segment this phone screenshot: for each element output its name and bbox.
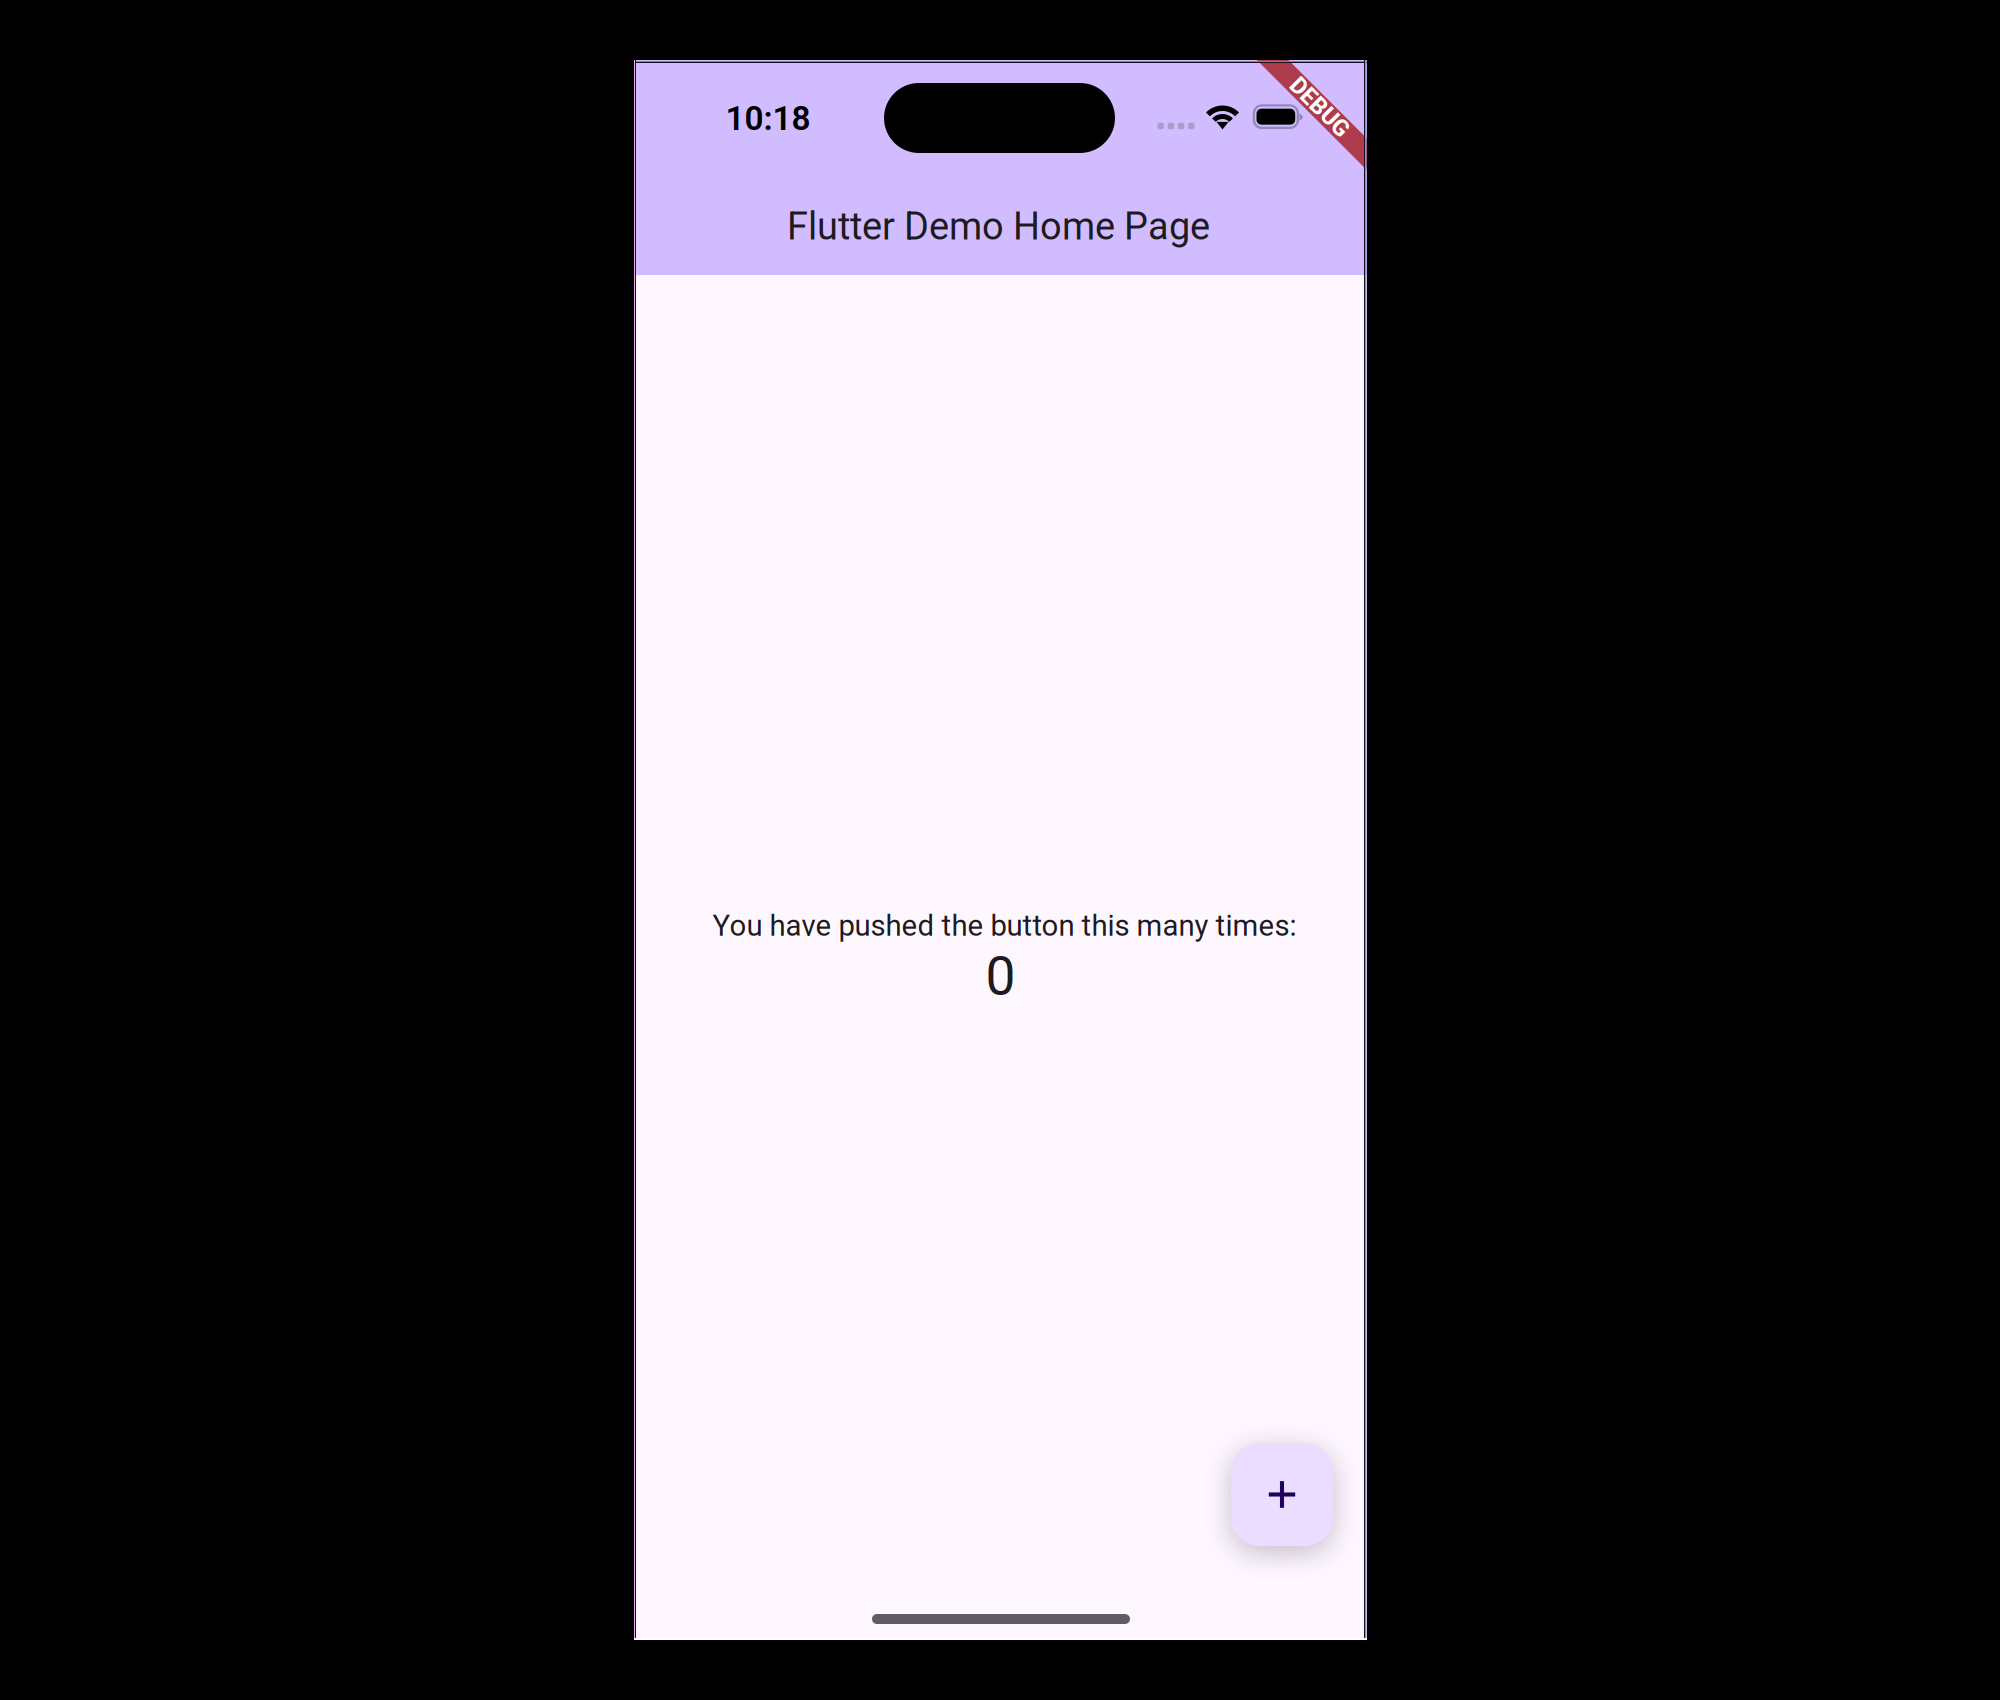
staticText: 0: [985, 945, 1015, 1007]
staticText: DEBUG: [1283, 93, 1357, 121]
button[interactable]: Increment: [1231, 1443, 1333, 1546]
staticText: You have pushed the button this many tim…: [712, 909, 1296, 943]
staticText: Flutter Demo Home Page: [787, 204, 1210, 249]
staticText: 10:18: [725, 99, 810, 138]
